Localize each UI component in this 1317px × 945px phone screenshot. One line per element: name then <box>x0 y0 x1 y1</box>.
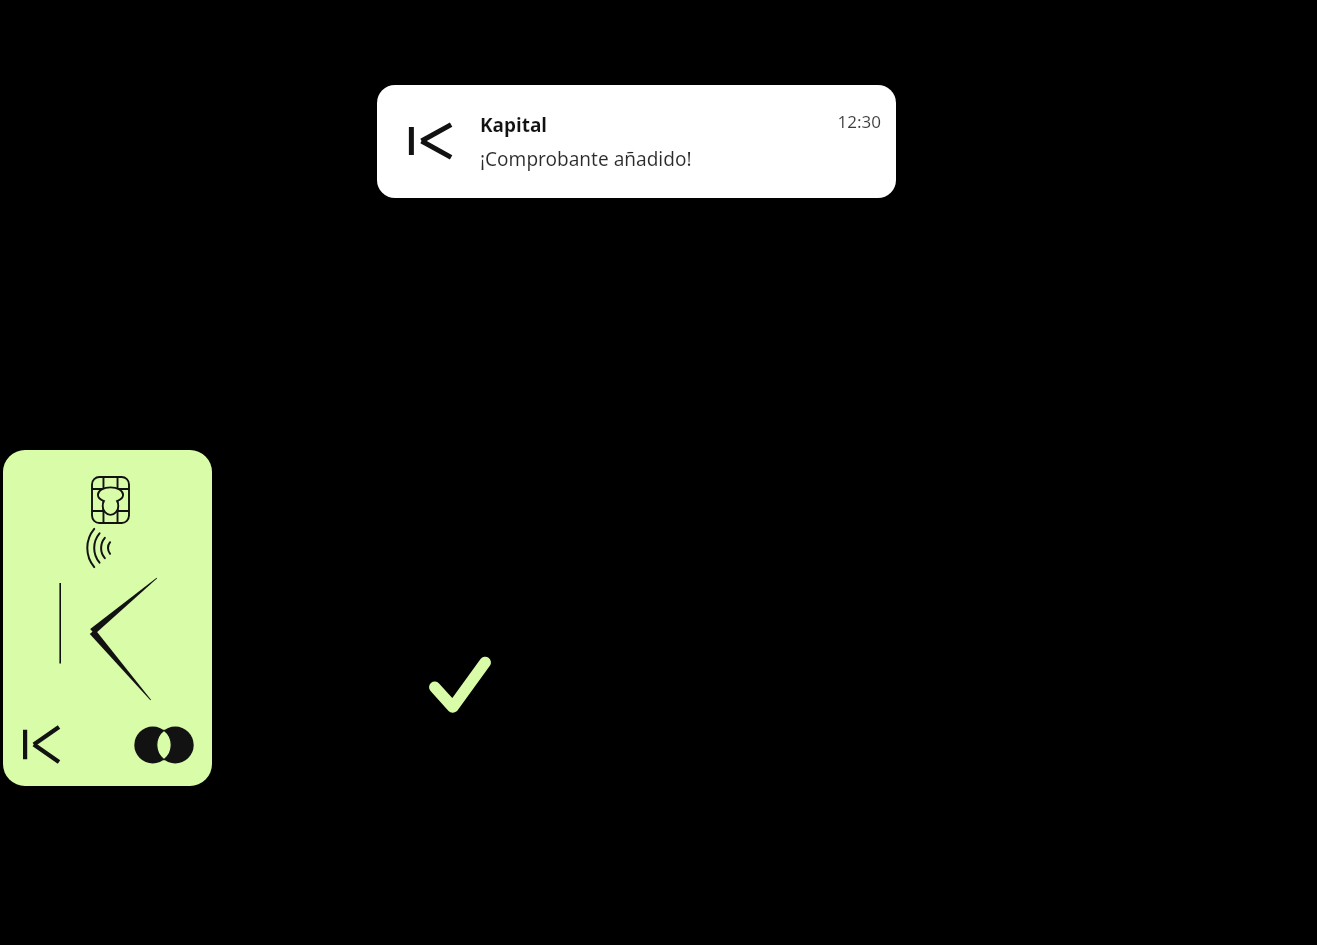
staticText: Kapital <box>480 112 547 138</box>
other: Success <box>430 655 490 717</box>
button[interactable]: Kapital app icon <box>377 85 896 198</box>
other: Kapital app icon <box>406 117 454 165</box>
other: Mastercard <box>131 724 197 766</box>
staticText: ¡Comprobante añadido! <box>480 146 692 172</box>
button[interactable]: Kapital logo <box>3 450 212 786</box>
other: Kapital logo <box>21 722 63 769</box>
staticText: 12:30 <box>821 110 881 133</box>
